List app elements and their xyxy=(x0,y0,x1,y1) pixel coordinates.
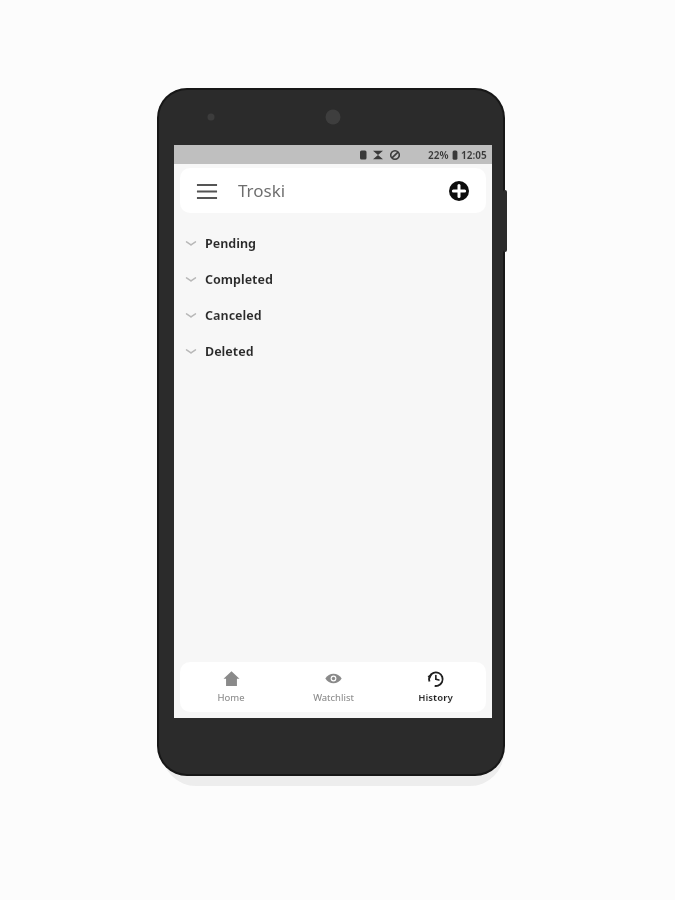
button[interactable]: Pending xyxy=(174,225,492,261)
staticText: Canceled xyxy=(205,307,262,324)
staticText: Watchlist xyxy=(313,691,354,704)
staticText: History xyxy=(418,691,453,704)
button[interactable]: Home xyxy=(180,662,282,712)
button[interactable]: History xyxy=(384,662,486,712)
staticText: Pending xyxy=(205,235,257,252)
staticText: 12:05 xyxy=(461,148,487,162)
staticText: Troski xyxy=(238,179,286,202)
button[interactable]: Add xyxy=(444,176,474,206)
button[interactable]: Canceled xyxy=(174,297,492,333)
staticText: Deleted xyxy=(205,343,254,360)
button[interactable]: Deleted xyxy=(174,333,492,369)
button[interactable]: Open navigation menu xyxy=(192,176,222,206)
staticText: Home xyxy=(217,691,245,704)
staticText: Completed xyxy=(205,271,273,288)
button[interactable]: Watchlist xyxy=(282,662,384,712)
button[interactable]: Completed xyxy=(174,261,492,297)
staticText: 22% xyxy=(428,148,449,162)
